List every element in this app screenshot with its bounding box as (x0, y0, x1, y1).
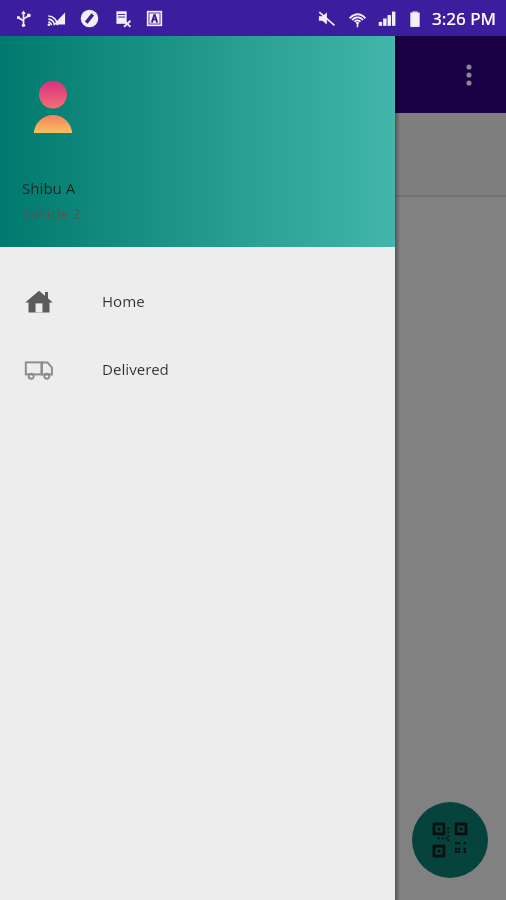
button[interactable]: Delivered (0, 335, 395, 403)
staticText: Vehicle 2 (22, 204, 81, 223)
staticText: Delivered (102, 359, 169, 379)
staticText: Shibu A (22, 178, 76, 198)
button[interactable]: Jobs (300, 129, 388, 179)
staticText: 3:26 PM (432, 7, 496, 30)
button[interactable]: More options (452, 58, 486, 92)
button[interactable]: Shibu A (0, 36, 395, 247)
button[interactable]: Scan QR code (412, 802, 488, 878)
button[interactable]: Home (0, 267, 395, 335)
staticText: Home (102, 291, 145, 311)
